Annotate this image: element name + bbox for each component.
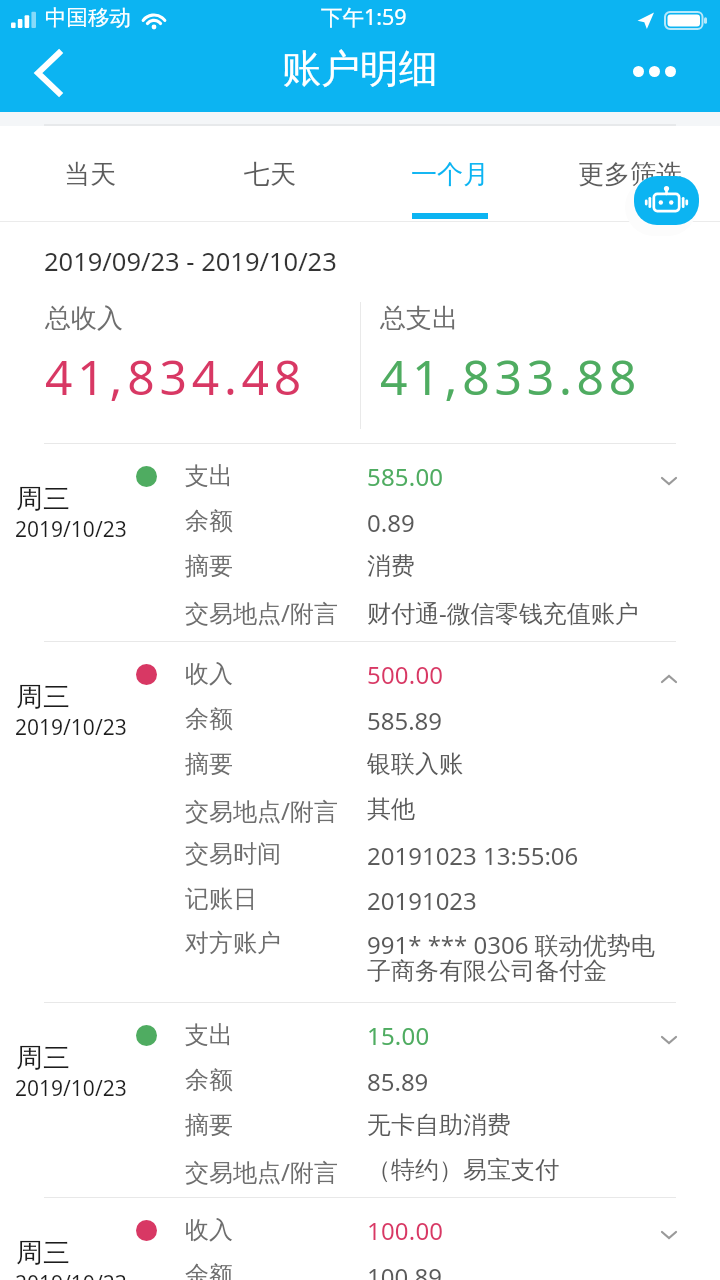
staticText: 2019/10/23	[15, 713, 127, 742]
staticText: 中国移动	[45, 4, 131, 31]
staticText: 周三	[16, 1041, 70, 1075]
staticText: 收入	[185, 659, 233, 689]
staticText: 交易地点/附言	[185, 794, 338, 827]
staticText: 余额	[185, 1260, 233, 1280]
staticText: 收入	[185, 1215, 233, 1245]
staticText: 支出	[185, 1020, 233, 1050]
staticText: 交易地点/附言	[185, 596, 338, 629]
staticText: 总支出	[380, 302, 458, 335]
staticText: 100.00	[367, 1214, 444, 1247]
button[interactable]: 收起	[651, 661, 687, 697]
button[interactable]: 一个月	[360, 126, 540, 222]
staticText: 对方账户	[185, 928, 281, 958]
staticText: 总收入	[45, 302, 123, 335]
staticText: 摘要	[185, 1110, 233, 1140]
button[interactable]: 展开	[651, 1022, 687, 1058]
staticText: 41,833.88	[380, 344, 642, 409]
staticText: 周三	[16, 680, 70, 714]
staticText: 一个月	[411, 158, 489, 191]
button[interactable]: 周三	[0, 1197, 720, 1280]
staticText: 周三	[16, 482, 70, 516]
staticText: 15.00	[367, 1019, 430, 1052]
staticText: 余额	[185, 506, 233, 536]
button[interactable]: 更多	[612, 40, 708, 112]
staticText: 41,834.48	[45, 344, 307, 409]
staticText: 当天	[64, 158, 116, 191]
button[interactable]: 周三	[0, 641, 720, 1002]
staticText: 余额	[185, 1065, 233, 1095]
staticText: 七天	[244, 158, 296, 191]
staticText: 500.00	[367, 658, 444, 691]
staticText: 交易地点/附言	[185, 1155, 338, 1188]
staticText: 摘要	[185, 551, 233, 581]
button[interactable]: 周三	[0, 443, 720, 641]
staticText: 20191023	[367, 884, 477, 917]
staticText: 记账日	[185, 884, 257, 914]
button[interactable]: 更多筛选	[540, 126, 720, 222]
staticText: 585.00	[367, 460, 444, 493]
staticText: 摘要	[185, 749, 233, 779]
staticText: 消费	[367, 551, 415, 581]
staticText: 585.89	[367, 704, 443, 737]
button[interactable]: 周三	[0, 1002, 720, 1197]
button[interactable]: 七天	[180, 126, 360, 222]
staticText: 991* *** 0306 联动优势电子商务有限公司备付金	[367, 928, 657, 987]
staticText: 其他	[367, 794, 415, 824]
staticText: 0.89	[367, 506, 415, 539]
staticText: 下午1:59	[321, 2, 407, 31]
staticText: 银联入账	[367, 749, 463, 779]
button[interactable]: 展开	[651, 463, 687, 499]
staticText: 支出	[185, 461, 233, 491]
staticText: 2019/10/23	[15, 1074, 127, 1103]
staticText: 2019/10/23	[15, 515, 127, 544]
staticText: 更多筛选	[578, 158, 682, 191]
staticText: （特约）易宝支付	[367, 1155, 559, 1185]
button[interactable]: 智能客服	[634, 176, 699, 225]
staticText: 85.89	[367, 1065, 429, 1098]
staticText: 财付通-微信零钱充值账户	[367, 596, 639, 629]
staticText: 交易时间	[185, 839, 281, 869]
staticText: 2019/10/23	[15, 1269, 127, 1280]
staticText: 周三	[16, 1236, 70, 1270]
staticText: 余额	[185, 704, 233, 734]
staticText: 20191023 13:55:06	[367, 839, 579, 872]
button[interactable]: 展开	[651, 1217, 687, 1253]
staticText: 2019/09/23 - 2019/10/23	[44, 244, 337, 279]
staticText: 100.89	[367, 1260, 443, 1280]
staticText: 无卡自助消费	[367, 1110, 511, 1140]
button[interactable]: 当天	[0, 126, 180, 222]
staticText: 账户明细	[282, 44, 438, 93]
button[interactable]: 返回	[0, 34, 96, 106]
